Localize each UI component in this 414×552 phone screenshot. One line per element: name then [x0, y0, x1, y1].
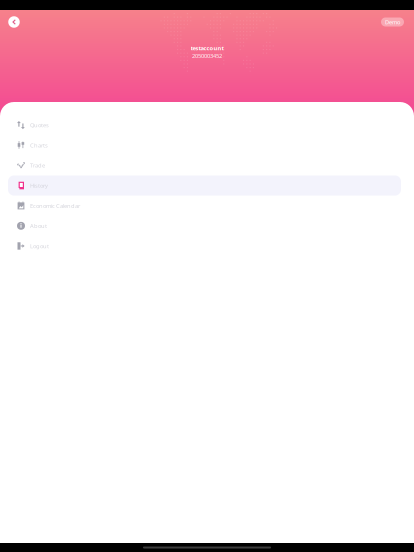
button[interactable]: Back — [4, 12, 24, 32]
staticText: Charts — [30, 141, 48, 149]
button[interactable]: Charts — [0, 135, 414, 155]
button[interactable]: Logout — [0, 236, 414, 256]
button[interactable]: History — [0, 175, 414, 195]
staticText: About — [30, 222, 47, 230]
staticText: Economic Calendar — [30, 202, 80, 210]
button[interactable]: Demo — [381, 17, 404, 26]
staticText: 2050003452 — [192, 52, 222, 60]
staticText: Quotes — [30, 121, 49, 129]
staticText: History — [30, 182, 48, 189]
staticText: Logout — [30, 242, 49, 250]
staticText: Demo — [385, 18, 400, 26]
button[interactable]: About — [0, 216, 414, 236]
button[interactable]: Economic Calendar — [0, 196, 414, 216]
button[interactable]: Quotes — [0, 115, 414, 135]
staticText: testaccount — [190, 44, 223, 52]
staticText: Trade — [30, 161, 45, 169]
